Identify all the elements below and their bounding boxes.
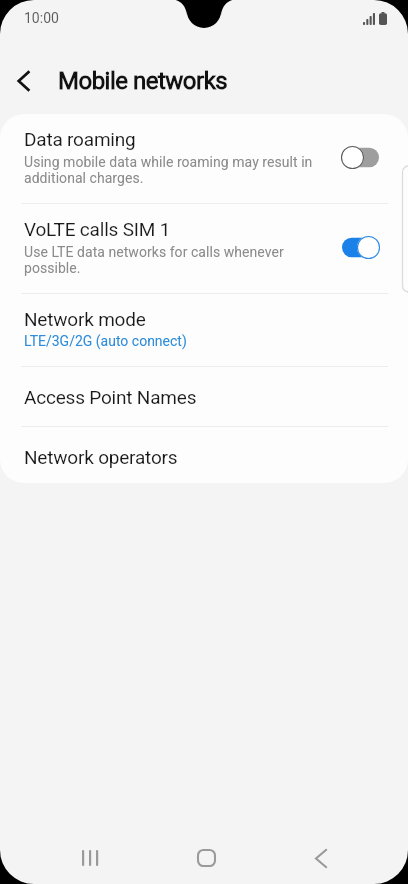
staticText: Network mode xyxy=(24,308,146,330)
staticText: Access Point Names xyxy=(24,386,197,408)
button[interactable]: Data roaming xyxy=(0,114,408,203)
button[interactable]: Access Point Names xyxy=(0,367,408,426)
button[interactable]: VoLTE calls SIM 1 xyxy=(0,204,408,293)
staticText: VoLTE calls SIM 1 xyxy=(24,218,171,240)
staticText: Use LTE data networks for calls whenever… xyxy=(24,244,324,276)
staticText: Using mobile data while roaming may resu… xyxy=(24,154,324,186)
button[interactable]: Home xyxy=(171,841,241,875)
button[interactable]: Off xyxy=(336,142,384,172)
button[interactable]: Back xyxy=(286,841,356,875)
staticText: Network operators xyxy=(24,446,178,468)
button[interactable]: Network mode xyxy=(0,294,408,366)
button[interactable]: Network operators xyxy=(0,427,408,483)
button[interactable]: Back xyxy=(0,51,48,99)
staticText: LTE/3G/2G (auto connect) xyxy=(24,333,187,349)
staticText: Data roaming xyxy=(24,128,136,150)
button[interactable]: Recent apps xyxy=(55,841,125,875)
staticText: 10:00 xyxy=(24,10,59,26)
button[interactable]: On xyxy=(336,232,384,262)
staticText: Mobile networks xyxy=(58,67,228,95)
